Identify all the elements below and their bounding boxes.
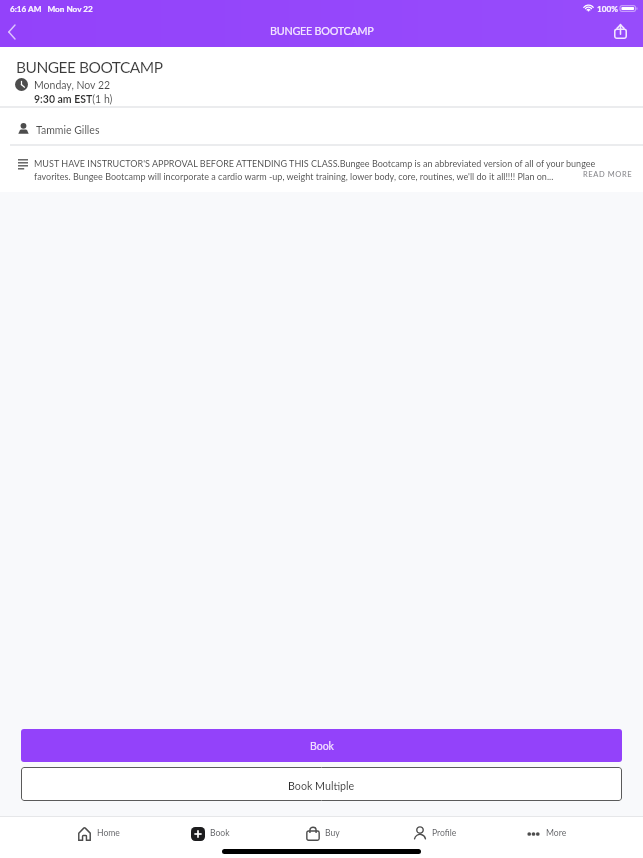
staticText: Home [97,828,120,838]
button[interactable]: Buy [266,825,378,841]
staticText: BUNGEE BOOTCAMP [270,24,374,37]
staticText: MUST HAVE INSTRUCTOR'S APPROVAL BEFORE A… [34,158,596,169]
staticText: Book Multiple [288,779,355,792]
staticText: Book [310,740,334,753]
button[interactable]: Profile [378,825,490,841]
staticText: 9:30 am EST(1 h) [34,93,113,106]
button[interactable]: Home [42,825,154,841]
staticText: More [546,828,567,838]
button[interactable]: Book Multiple [21,767,622,801]
button[interactable]: Book [21,729,622,762]
staticText: READ MORE [583,170,633,179]
staticText: 100% [597,4,618,14]
button[interactable]: Back [0,21,22,43]
button[interactable]: Book [154,825,266,841]
button[interactable]: READ MORE [583,170,633,179]
staticText: Buy [325,828,340,838]
button[interactable]: Share [607,18,633,44]
button[interactable]: Tammie Gilles [0,111,643,149]
staticText: Book [210,828,230,838]
staticText: 6:16 AM Mon Nov 22 [10,4,93,14]
staticText: Tammie Gilles [36,124,100,137]
button[interactable]: More [490,825,602,841]
staticText: Monday, Nov 22 [34,79,111,92]
staticText: BUNGEE BOOTCAMP [16,58,163,77]
staticText: Profile [432,828,457,838]
staticText: favorites. Bungee Bootcamp will incorpor… [34,171,554,182]
